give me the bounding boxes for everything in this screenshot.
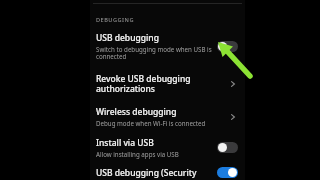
- button[interactable]: Toggle on: [217, 167, 238, 178]
- staticText: USB debugging: [96, 32, 159, 44]
- button[interactable]: Toggle off: [217, 142, 238, 153]
- other: Open: [228, 112, 238, 122]
- button[interactable]: Revoke USB debugging authorizations: [93, 67, 242, 101]
- button[interactable]: USB debugging (Security settings): [93, 163, 242, 180]
- button[interactable]: Toggle off: [217, 41, 238, 52]
- staticText: Install via USB: [96, 137, 154, 149]
- staticText: Switch to debugging mode when USB is con…: [96, 45, 212, 61]
- staticText: DEBUGGING: [96, 16, 135, 24]
- staticText: Wireless debugging: [96, 106, 177, 118]
- button[interactable]: Wireless debugging: [93, 101, 242, 132]
- other: Open: [228, 79, 238, 89]
- staticText: Revoke USB debugging authorizations: [96, 73, 223, 95]
- staticText: USB debugging (Security settings): [96, 167, 197, 178]
- staticText: Debug mode when Wi-Fi is connected: [96, 119, 206, 127]
- button[interactable]: Install via USB: [93, 132, 242, 163]
- button[interactable]: USB debugging: [93, 30, 242, 67]
- staticText: Allow installing apps via USB: [96, 150, 179, 158]
